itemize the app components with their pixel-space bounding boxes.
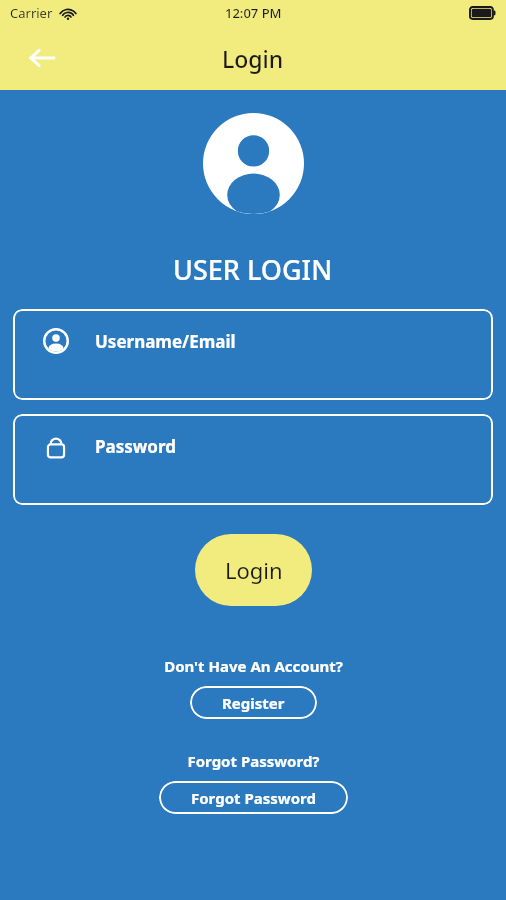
button[interactable]: Back — [18, 34, 66, 82]
button[interactable]: Password — [13, 414, 493, 505]
button[interactable]: Register — [190, 686, 317, 719]
staticText: Carrier — [10, 4, 53, 22]
staticText: Password — [95, 435, 176, 458]
staticText: Forgot Password? — [187, 751, 320, 771]
staticText: Forgot Password — [191, 788, 316, 808]
staticText: Don't Have An Account? — [164, 656, 343, 676]
staticText: Register — [222, 693, 285, 713]
button[interactable]: Login — [195, 534, 312, 606]
staticText: Login — [225, 555, 283, 585]
staticText: Username/Email — [95, 330, 236, 353]
button[interactable]: Forgot Password — [159, 781, 348, 814]
staticText: 12:07 PM — [225, 4, 282, 22]
staticText: USER LOGIN — [173, 251, 333, 288]
button[interactable]: Username/Email — [13, 309, 493, 400]
staticText: Login — [222, 43, 284, 74]
